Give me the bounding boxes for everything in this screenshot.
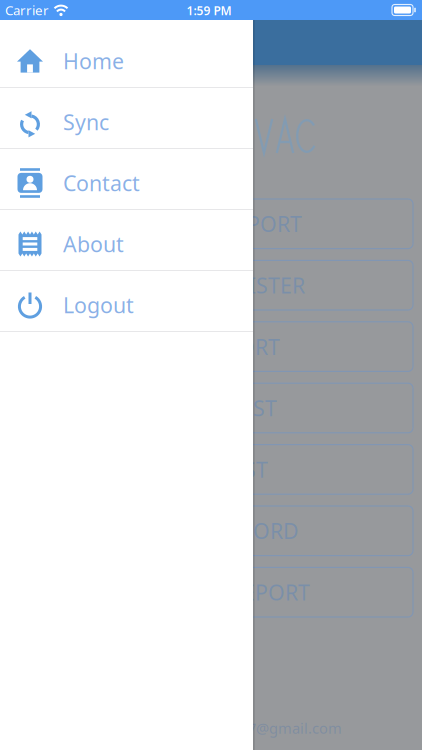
button[interactable]: REPORT — [9, 199, 413, 249]
button[interactable]: REPORT — [9, 567, 413, 617]
staticText: LIST — [235, 394, 277, 422]
button[interactable]: RECORD — [9, 506, 413, 556]
button[interactable]: About — [0, 210, 253, 271]
staticText: Carrier — [5, 1, 49, 19]
button[interactable]: Home — [0, 27, 253, 88]
staticText: Sync — [63, 108, 109, 136]
button[interactable]: Logout — [0, 271, 253, 332]
staticText: LIST — [226, 455, 268, 483]
button[interactable]: LIST — [9, 383, 413, 433]
button[interactable]: Sync — [0, 88, 253, 149]
staticText: 1:59 PM — [186, 2, 231, 18]
button[interactable]: Contact — [0, 149, 253, 210]
button[interactable]: EXPORT — [9, 322, 413, 371]
button[interactable]: REGISTER — [9, 260, 413, 310]
staticText: REPORT — [222, 210, 302, 238]
staticText: Home — [63, 47, 124, 75]
staticText: Logout — [63, 291, 134, 319]
staticText: RECORD — [215, 517, 299, 545]
staticText: immunization7@gmail.com — [152, 718, 342, 738]
button[interactable]: LIST — [9, 445, 413, 494]
staticText: REPORT — [230, 578, 310, 606]
staticText: REGISTER — [208, 271, 305, 299]
staticText: Contact — [63, 169, 140, 197]
staticText: About — [63, 230, 124, 258]
staticText: EXPORT — [200, 332, 280, 361]
